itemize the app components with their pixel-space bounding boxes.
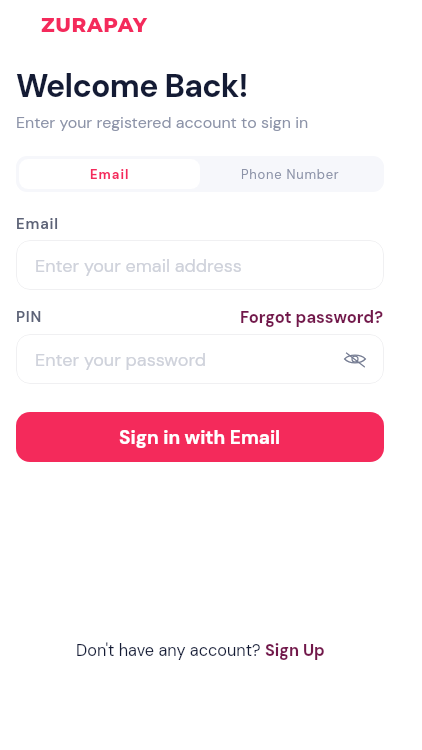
button[interactable]: Enter your password xyxy=(16,334,384,384)
staticText: ZURAPAY xyxy=(41,13,148,37)
button[interactable]: Show password xyxy=(342,346,368,372)
button[interactable]: Sign in with Email xyxy=(16,412,384,462)
button[interactable]: Phone Number xyxy=(200,159,381,189)
button[interactable]: Email xyxy=(19,159,200,189)
button[interactable]: Don't have any account? xyxy=(16,640,384,661)
staticText: Email xyxy=(16,214,59,234)
staticText: Enter your registered account to sign in xyxy=(16,112,309,133)
staticText: Enter your password xyxy=(35,348,342,371)
staticText: Enter your email address xyxy=(35,254,368,277)
staticText: Don't have any account? xyxy=(76,640,265,661)
button[interactable]: Enter your email address xyxy=(16,240,384,290)
staticText: Sign in with Email xyxy=(119,425,281,450)
staticText: Email xyxy=(90,166,130,183)
staticText: Phone Number xyxy=(241,166,340,183)
button[interactable]: Forgot password? xyxy=(240,307,384,328)
staticText: Welcome Back! xyxy=(16,65,248,107)
staticText: Sign Up xyxy=(265,640,325,661)
staticText: PIN xyxy=(16,307,43,327)
